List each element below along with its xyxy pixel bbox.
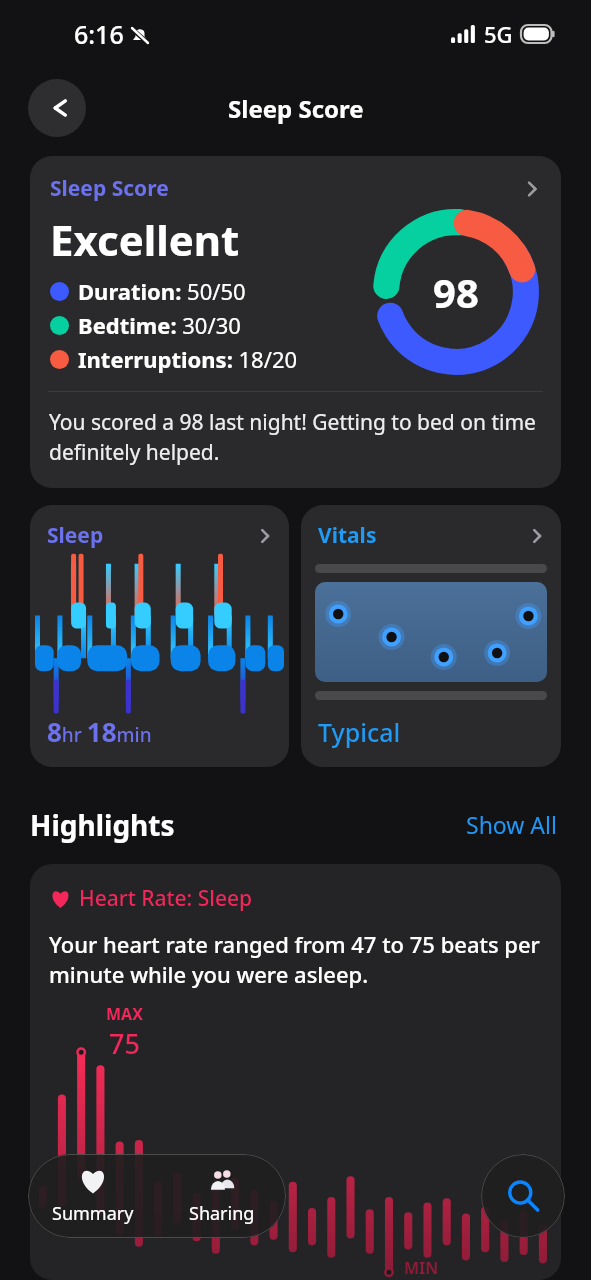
staticText: 6:16 [74,17,124,51]
staticText: Summary [52,1201,134,1226]
staticText: Your heart rate ranged from 47 to 75 bea… [49,929,541,989]
staticText: 8hr 18min [47,714,152,749]
staticText: Sleep Score [50,174,169,203]
staticText: Highlights [30,806,175,844]
staticText: Show All [466,809,557,840]
staticText: Sharing [189,1201,255,1226]
button[interactable]: Sleep [30,505,289,767]
button[interactable]: Show All [462,805,561,844]
button[interactable]: Sleep Score [30,156,561,488]
staticText: MAX [106,1003,143,1025]
staticText: 5G [484,19,513,49]
button[interactable]: Search [481,1154,565,1238]
button[interactable]: Summary [28,1154,157,1238]
button[interactable]: Vitals [301,505,561,767]
staticText: Typical [318,715,401,749]
staticText: Interruptions: 18/20 [78,344,298,374]
staticText: Excellent [50,211,240,268]
staticText: Sleep [47,521,104,550]
staticText: 75 [109,1025,140,1062]
staticText: Bedtime: 30/30 [78,310,241,340]
button[interactable]: Sharing [157,1154,286,1238]
button[interactable]: Heart Rate: Sleep [30,864,561,1280]
staticText: Duration: 50/50 [78,276,246,306]
staticText: Vitals [318,521,377,550]
button[interactable]: Back [28,79,86,137]
staticText: MIN [404,1257,439,1279]
staticText: You scored a 98 last night! Getting to b… [49,408,537,466]
staticText: Sleep Score [228,92,364,125]
staticText: Heart Rate: Sleep [79,884,253,913]
staticText: 98 [433,265,479,319]
